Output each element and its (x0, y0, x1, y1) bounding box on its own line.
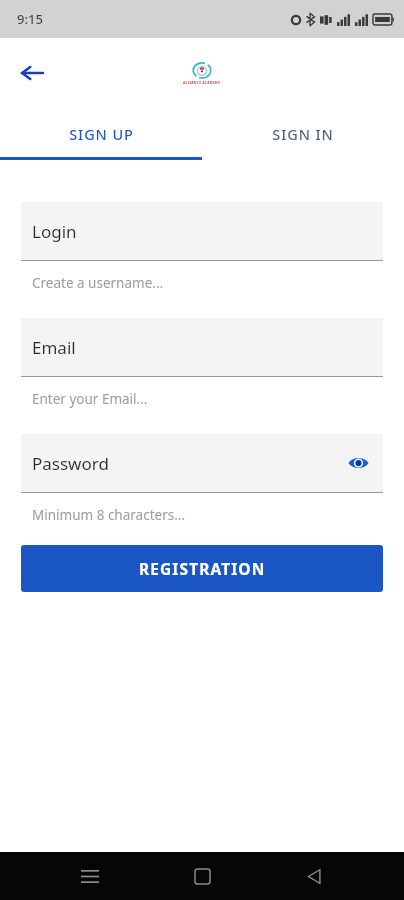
button[interactable]: Recent apps (68, 854, 112, 898)
button[interactable]: Back (292, 854, 336, 898)
button[interactable]: SIGN UP (0, 108, 202, 160)
button[interactable]: SIGN IN (202, 108, 404, 160)
staticText: Password (32, 452, 109, 475)
button[interactable]: Show password (341, 446, 375, 480)
staticText: Minimum 8 characters... (32, 506, 186, 524)
staticText: Create a username... (32, 274, 164, 292)
staticText: Enter your Email... (32, 390, 148, 408)
button[interactable]: REGISTRATION (21, 545, 383, 592)
staticText: REGISTRATION (139, 558, 266, 579)
staticText: SIGN IN (272, 124, 334, 144)
button[interactable]: Back (12, 53, 52, 93)
staticText: 9:15 (17, 10, 43, 28)
button[interactable]: Login (21, 202, 383, 260)
button[interactable]: Email (21, 318, 383, 376)
button[interactable]: Home (180, 854, 224, 898)
staticText: ALLIANCE ACADEMY (183, 80, 221, 85)
staticText: SIGN UP (69, 124, 134, 144)
staticText: Email (32, 336, 76, 359)
staticText: Login (32, 220, 77, 243)
button[interactable]: Password (21, 434, 383, 492)
